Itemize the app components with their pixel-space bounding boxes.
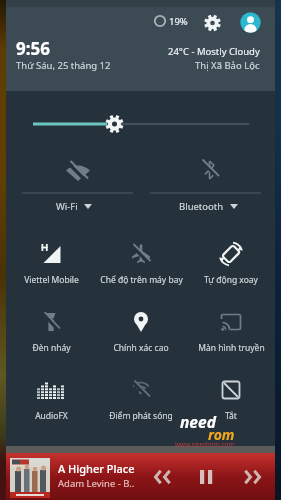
button[interactable]: Wi-Fi (6, 150, 141, 222)
staticText: www.needrom.com (175, 440, 235, 449)
staticText: Adam Levine - B.. (58, 477, 135, 490)
staticText: rom (208, 425, 235, 444)
staticText: Viettel Mobile (24, 274, 79, 286)
button[interactable]: Tắt (186, 366, 276, 432)
staticText: Chính xác cao (113, 342, 169, 354)
staticText: Màn hình truyền (198, 342, 265, 354)
staticText: AudioFX (35, 410, 68, 422)
button[interactable]: Màn hình truyền (186, 298, 276, 364)
staticText: Bluetooth (179, 200, 224, 213)
button[interactable]: Viettel Mobile (6, 230, 96, 296)
button[interactable]: Bluetooth (141, 150, 275, 222)
button[interactable]: Chính xác cao (96, 298, 186, 364)
button[interactable]: A Higher Place (6, 453, 275, 500)
button[interactable] (236, 465, 264, 489)
button[interactable]: Chế độ trên máy bay (96, 230, 186, 296)
button[interactable] (240, 12, 261, 33)
staticText: A Higher Place (58, 461, 135, 476)
button[interactable] (194, 465, 218, 489)
staticText: Thị Xã Bảo Lộc (195, 59, 260, 72)
button[interactable]: AudioFX (6, 366, 96, 432)
button[interactable]: Điểm phát sóng (96, 366, 186, 432)
staticText: Tự động xoay (204, 274, 258, 286)
staticText: Đèn nháy (32, 342, 71, 354)
staticText: Thứ Sáu, 25 tháng 12 (16, 59, 111, 72)
button[interactable] (151, 465, 179, 489)
button[interactable] (202, 12, 223, 33)
button[interactable]: Đèn nháy (6, 298, 96, 364)
staticText: 19% (169, 15, 188, 28)
staticText: Chế độ trên máy bay (100, 274, 183, 286)
staticText: Wi-Fi (56, 200, 78, 213)
button[interactable] (25, 112, 260, 136)
staticText: 24°C - Mostly Cloudy (168, 45, 260, 58)
staticText: Tắt (225, 410, 237, 422)
staticText: need (180, 411, 216, 432)
staticText: Điểm phát sóng (109, 410, 173, 422)
button[interactable]: Tự động xoay (186, 230, 276, 296)
staticText: 9:56 (16, 37, 50, 60)
